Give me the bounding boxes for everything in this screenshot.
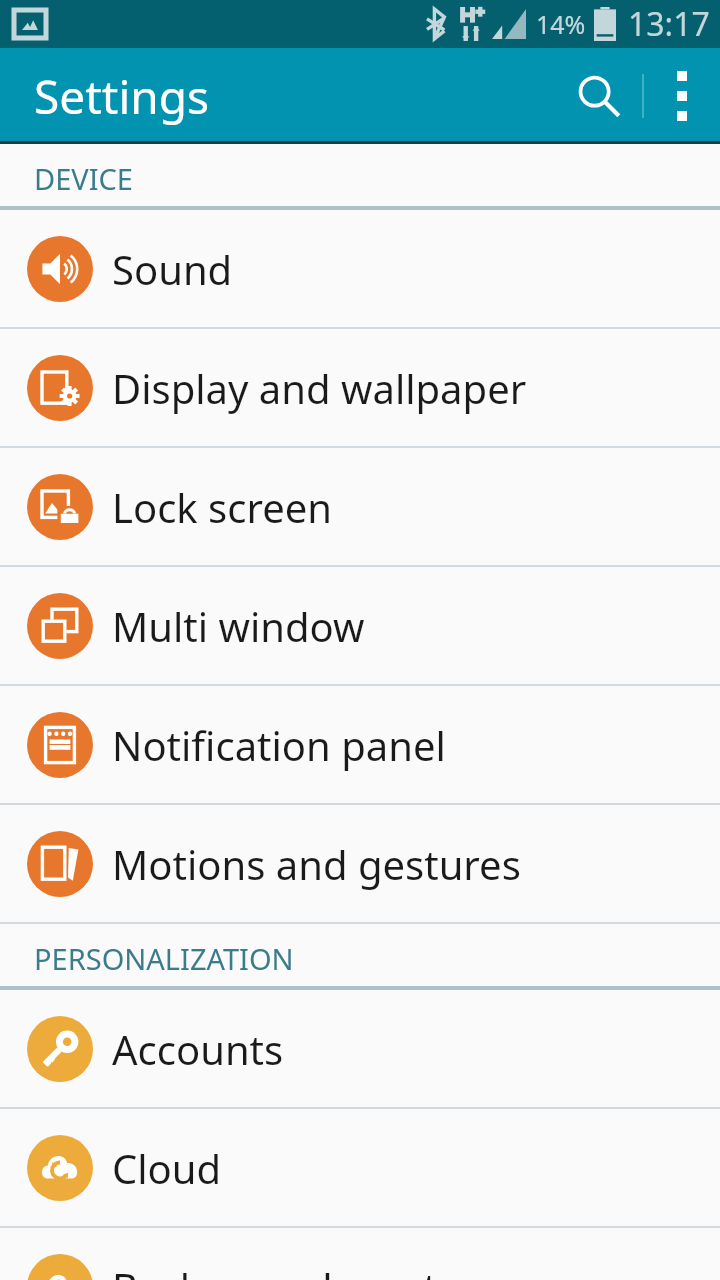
button[interactable]: More options — [644, 48, 720, 144]
staticText: DEVICE — [34, 159, 133, 198]
button[interactable]: Motions and gestures — [0, 805, 720, 922]
button[interactable]: Display and wallpaper — [0, 329, 720, 446]
button[interactable]: Notification panel — [0, 686, 720, 803]
staticText: PERSONALIZATION — [34, 939, 294, 978]
staticText: 14% — [536, 7, 586, 41]
button[interactable]: Sound — [0, 210, 720, 327]
staticText: Lock screen — [112, 480, 333, 534]
staticText: 13:17 — [628, 2, 710, 46]
staticText: Backup and reset — [112, 1260, 438, 1280]
staticText: Cloud — [112, 1141, 222, 1195]
staticText: Accounts — [112, 1022, 284, 1076]
button[interactable]: Accounts — [0, 990, 720, 1107]
staticText: Multi window — [112, 599, 365, 653]
button[interactable]: Search — [556, 48, 642, 144]
button[interactable]: Multi window — [0, 567, 720, 684]
button[interactable]: Lock screen — [0, 448, 720, 565]
button[interactable]: Cloud — [0, 1109, 720, 1226]
staticText: Settings — [34, 65, 210, 128]
staticText: Display and wallpaper — [112, 361, 527, 415]
button[interactable]: Backup and reset — [0, 1228, 720, 1280]
staticText: Motions and gestures — [112, 837, 521, 891]
staticText: Notification panel — [112, 718, 446, 772]
staticText: Sound — [112, 242, 233, 296]
